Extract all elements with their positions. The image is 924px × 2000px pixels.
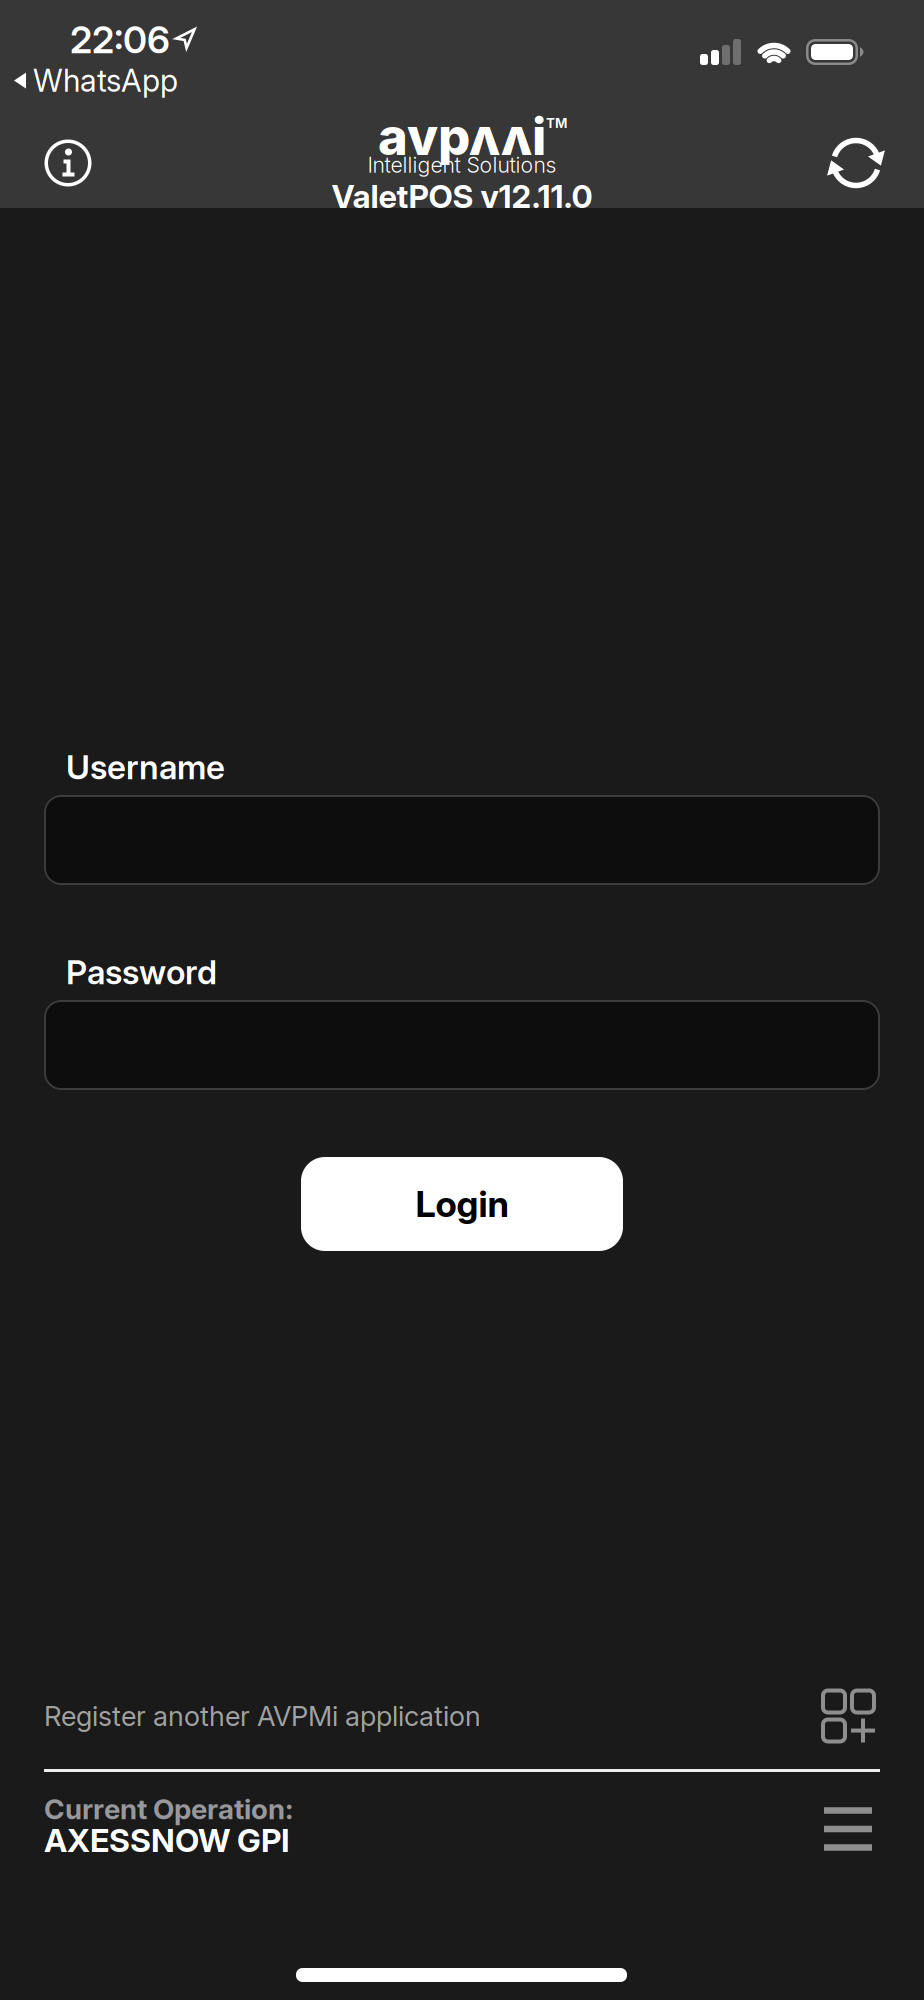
button[interactable]: Password [44,1000,880,1090]
button[interactable]: Menu [820,1804,876,1854]
button[interactable]: Username [44,795,880,885]
staticText: Username [66,747,225,787]
staticText: Password [66,952,217,992]
button[interactable]: Login [301,1157,623,1251]
staticText: WhatsApp [33,62,178,99]
staticText: ValetPOS v12.11.0 [331,177,592,216]
staticText: avpʌʌi [378,106,546,167]
staticText: Current Operation: [44,1792,293,1826]
button[interactable]: Register another AVPMi application [44,1685,880,1747]
staticText: AXESSNOW GPI [44,1821,290,1860]
staticText: Login [415,1182,508,1226]
staticText: Register another AVPMi application [44,1699,481,1733]
button[interactable]: Back to WhatsApp [14,62,178,99]
button[interactable]: Refresh [828,135,884,191]
staticText: Intelligent Solutions [367,152,556,178]
staticText: TM [546,115,567,131]
button[interactable]: Info [40,135,96,191]
staticText: 22:06 [70,17,170,62]
